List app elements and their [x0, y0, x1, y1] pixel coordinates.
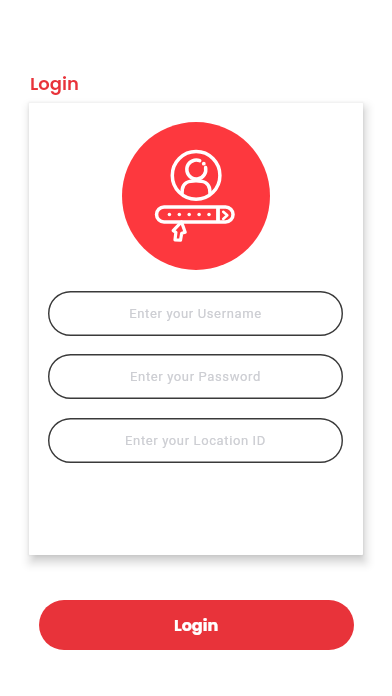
staticText: Enter your Password — [130, 369, 261, 384]
button[interactable]: Enter your Username — [48, 291, 343, 336]
staticText: Enter your Location ID — [125, 433, 266, 448]
staticText: Login — [30, 71, 79, 96]
staticText: Login — [174, 614, 219, 636]
staticText: Enter your Username — [129, 306, 262, 321]
button[interactable]: Enter your Location ID — [48, 418, 343, 463]
other: User login — [122, 122, 270, 270]
button[interactable]: Enter your Password — [48, 354, 343, 399]
button[interactable]: Login — [39, 600, 354, 650]
